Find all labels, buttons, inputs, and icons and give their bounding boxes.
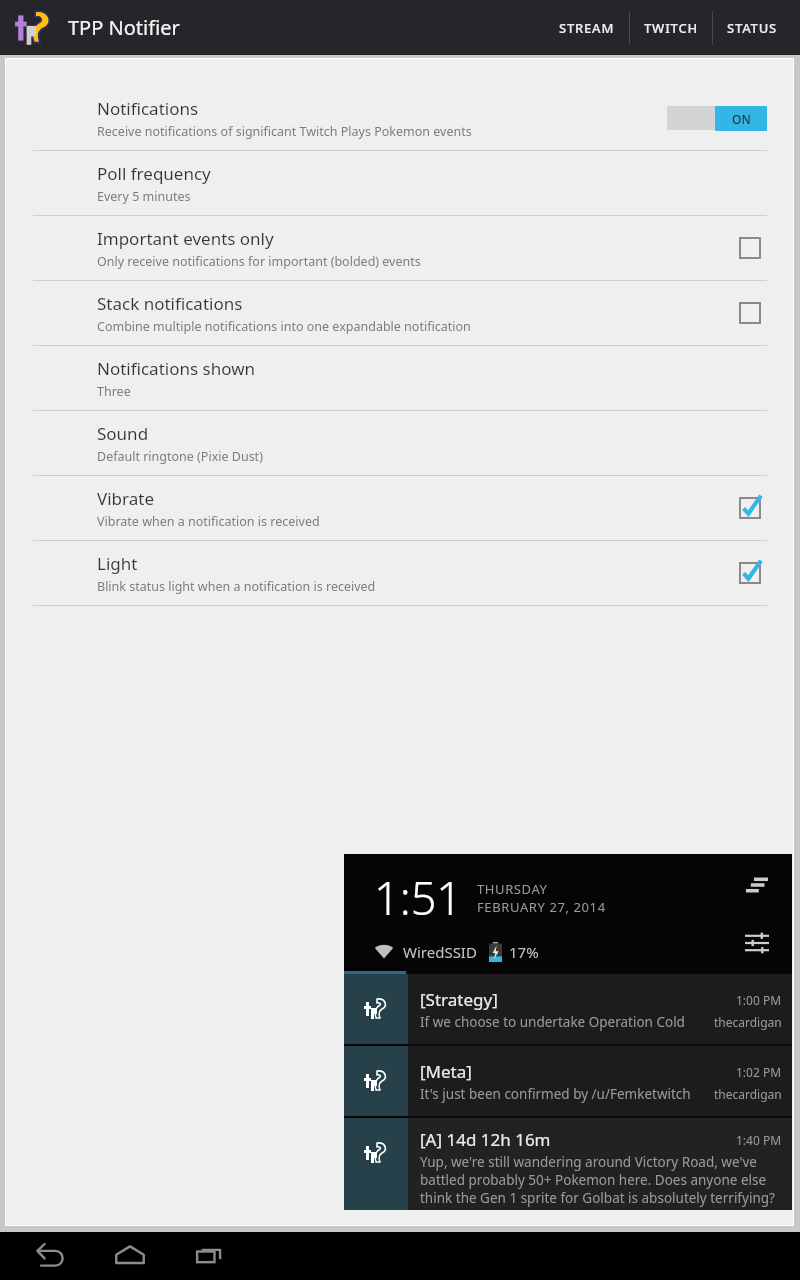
button[interactable]: Recent apps — [170, 1232, 250, 1280]
staticText: 17% — [509, 942, 539, 962]
button[interactable]: Unchecked — [733, 296, 767, 330]
staticText: [Strategy] — [420, 988, 736, 1011]
staticText: Combine multiple notifications into one … — [97, 318, 471, 335]
staticText: TPP Notifier — [68, 14, 180, 41]
staticText: STATUS — [727, 19, 778, 37]
staticText: Default ringtone (Pixie Dust) — [97, 448, 263, 465]
staticText: Notifications shown — [97, 357, 255, 380]
staticText: Sound — [97, 422, 149, 445]
staticText: TWITCH — [644, 19, 698, 37]
staticText: ON — [732, 111, 751, 127]
staticText: It's just been confirmed by /u/Femketwit… — [420, 1085, 708, 1103]
staticText: Only receive notifications for important… — [97, 253, 421, 270]
staticText: [Meta] — [420, 1060, 736, 1083]
button[interactable]: Vibrate — [6, 476, 793, 540]
staticText: Yup, we're still wandering around Victor… — [420, 1153, 782, 1207]
button[interactable]: Unchecked — [733, 231, 767, 265]
staticText: Stack notifications — [97, 292, 243, 315]
button[interactable]: [Strategy] — [344, 974, 792, 1044]
button[interactable]: Home — [90, 1232, 170, 1280]
staticText: Vibrate when a notification is received — [97, 513, 320, 530]
staticText: Every 5 minutes — [97, 188, 191, 205]
staticText: Three — [97, 383, 131, 400]
staticText: FEBRUARY 27, 2014 — [477, 898, 606, 916]
button[interactable]: Light — [6, 541, 793, 605]
staticText: Vibrate — [97, 487, 154, 510]
button[interactable]: STATUS — [713, 0, 792, 55]
button[interactable]: Poll frequency — [6, 151, 793, 215]
button[interactable]: Quick settings — [740, 926, 774, 960]
button[interactable]: [A] 14d 12h 16m — [344, 1118, 792, 1210]
staticText: STREAM — [559, 19, 615, 37]
staticText: Light — [97, 552, 138, 575]
staticText: thecardigan — [714, 1014, 782, 1030]
staticText: 1:00 PM — [736, 992, 782, 1008]
button[interactable]: [Meta] — [344, 1046, 792, 1116]
button[interactable]: Stack notifications — [6, 281, 793, 345]
button[interactable]: STREAM — [545, 0, 629, 55]
button[interactable]: Notifications toggle — [667, 104, 767, 132]
staticText: Notifications — [97, 97, 199, 120]
staticText: [A] 14d 12h 16m — [420, 1128, 736, 1151]
staticText: Blink status light when a notification i… — [97, 578, 376, 595]
button[interactable]: Notifications — [6, 86, 793, 150]
staticText: 1:51 — [374, 867, 463, 928]
button[interactable]: Important events only — [6, 216, 793, 280]
staticText: thecardigan — [714, 1086, 782, 1102]
button[interactable]: Clear all notifications — [740, 868, 774, 902]
button[interactable]: Checked — [733, 491, 767, 525]
staticText: Important events only — [97, 227, 274, 250]
staticText: 1:40 PM — [736, 1132, 782, 1148]
button[interactable]: Notifications shown — [6, 346, 793, 410]
staticText: Receive notifications of significant Twi… — [97, 123, 472, 140]
staticText: If we choose to undertake Operation Cold… — [420, 1013, 708, 1031]
button[interactable]: Sound — [6, 411, 793, 475]
button[interactable]: Back — [10, 1232, 90, 1280]
button[interactable]: TWITCH — [630, 0, 712, 55]
staticText: WiredSSID — [403, 942, 477, 962]
staticText: Poll frequency — [97, 162, 211, 185]
staticText: 1:02 PM — [736, 1064, 782, 1080]
button[interactable]: Checked — [733, 556, 767, 590]
staticText: THURSDAY — [477, 880, 548, 898]
